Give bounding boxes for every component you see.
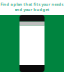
staticText: Find a plan that fits your needs xyxy=(0,1,63,7)
staticText: and your budget xyxy=(14,7,49,12)
